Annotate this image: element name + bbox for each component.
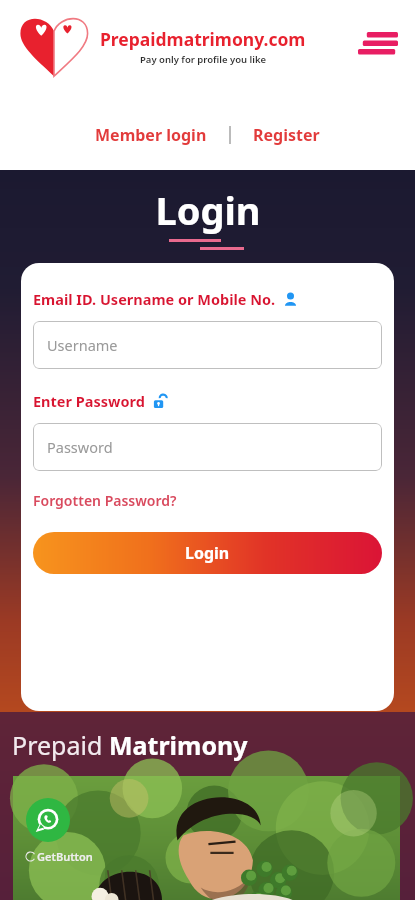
staticText: Register	[253, 124, 320, 146]
staticText: Enter Password	[33, 391, 145, 411]
button[interactable]: Password	[33, 423, 382, 471]
staticText: Forgotten Password?	[33, 491, 177, 510]
button[interactable]: Register	[245, 120, 328, 150]
staticText: Matrimony	[109, 728, 248, 762]
staticText: Password	[47, 437, 113, 457]
button[interactable]: Login	[33, 532, 382, 574]
staticText: Username	[47, 335, 118, 355]
staticText: Member login	[95, 124, 207, 146]
staticText: GetButton	[37, 849, 93, 864]
staticText: Login	[185, 542, 230, 564]
button[interactable]: Forgotten Password?	[33, 491, 177, 510]
staticText: Email ID. Username or Mobile No.	[33, 289, 276, 309]
button[interactable]: Chat on WhatsApp	[26, 798, 70, 842]
staticText: Prepaidmatrimony.com	[100, 27, 306, 51]
staticText: Pay only for profile you like	[140, 53, 267, 66]
button[interactable]: Member login	[87, 120, 215, 150]
button[interactable]: Open menu	[355, 29, 401, 63]
staticText: Login	[155, 184, 261, 236]
staticText: Prepaid	[12, 728, 109, 762]
button[interactable]: Username	[33, 321, 382, 369]
